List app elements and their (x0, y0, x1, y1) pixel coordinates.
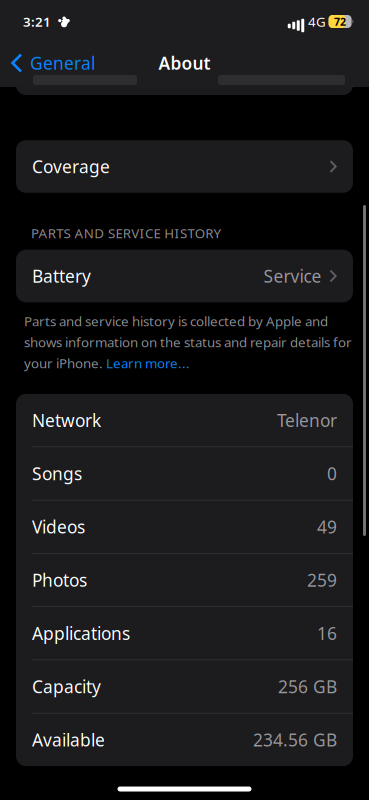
staticText: 259 (307, 568, 337, 591)
staticText: 49 (317, 515, 337, 538)
button[interactable]: Battery (16, 250, 353, 302)
staticText: Videos (32, 515, 85, 538)
staticText: Applications (32, 622, 130, 645)
staticText: Learn more... (106, 354, 190, 372)
staticText: 234.56 GB (253, 728, 337, 751)
staticText: Capacity (32, 675, 101, 698)
staticText: 4G (308, 13, 326, 30)
staticText: 16 (317, 622, 337, 645)
staticText: Parts and service history is collected b… (24, 312, 328, 330)
staticText: Telenor (277, 409, 337, 432)
staticText: 72 (334, 14, 346, 29)
staticText: 0 (327, 462, 337, 485)
staticText: Service (263, 264, 321, 287)
staticText: 3:21 (23, 13, 51, 30)
staticText: General (30, 51, 95, 74)
button[interactable]: Coverage (16, 140, 353, 193)
staticText: Available (32, 728, 105, 751)
staticText: Photos (32, 568, 87, 591)
staticText: About (158, 51, 210, 74)
staticText: Network (32, 409, 101, 432)
button[interactable]: Learn more... (106, 354, 190, 372)
staticText: shows information on the status and repa… (24, 333, 352, 351)
staticText: Battery (32, 264, 91, 287)
staticText: your iPhone. (24, 354, 106, 372)
staticText: Songs (32, 462, 82, 485)
staticText: 256 GB (278, 675, 337, 698)
button[interactable]: General (11, 48, 141, 78)
staticText: Coverage (32, 155, 110, 178)
staticText: PARTS AND SERVICE HISTORY (31, 224, 222, 242)
